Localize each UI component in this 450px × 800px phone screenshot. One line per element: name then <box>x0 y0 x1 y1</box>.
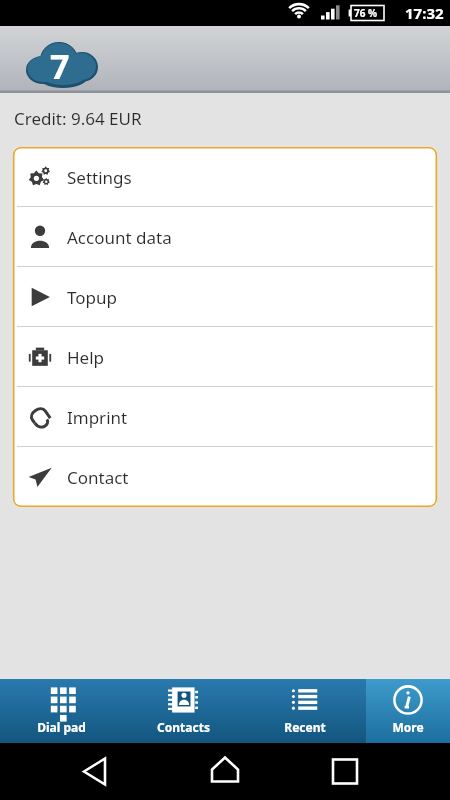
staticText: Imprint <box>67 406 128 429</box>
staticText: Topup <box>67 286 117 309</box>
staticText: More <box>392 719 424 735</box>
staticText: Dial pad <box>37 719 86 735</box>
button[interactable]: Contacts <box>122 679 244 743</box>
button[interactable]: Recent <box>244 679 366 743</box>
staticText: Recent <box>284 719 326 735</box>
button[interactable]: Help <box>13 327 437 387</box>
button[interactable]: Dial pad <box>0 679 122 743</box>
staticText: Credit: 9.64 EUR <box>14 107 142 130</box>
staticText: Settings <box>67 166 132 189</box>
button[interactable]: Topup <box>13 267 437 327</box>
staticText: Contacts <box>157 719 210 735</box>
staticText: Help <box>67 346 105 369</box>
staticText: Account data <box>67 226 172 249</box>
staticText: 76 % <box>354 6 378 20</box>
button[interactable]: Contact <box>13 447 437 507</box>
button[interactable]: Account data <box>13 207 437 267</box>
button[interactable]: Imprint <box>13 387 437 447</box>
button[interactable]: More <box>366 679 450 743</box>
staticText: 7 <box>50 43 70 89</box>
staticText: 17:32 <box>405 3 444 23</box>
button[interactable]: Settings <box>13 147 437 207</box>
staticText: Contact <box>67 466 129 489</box>
